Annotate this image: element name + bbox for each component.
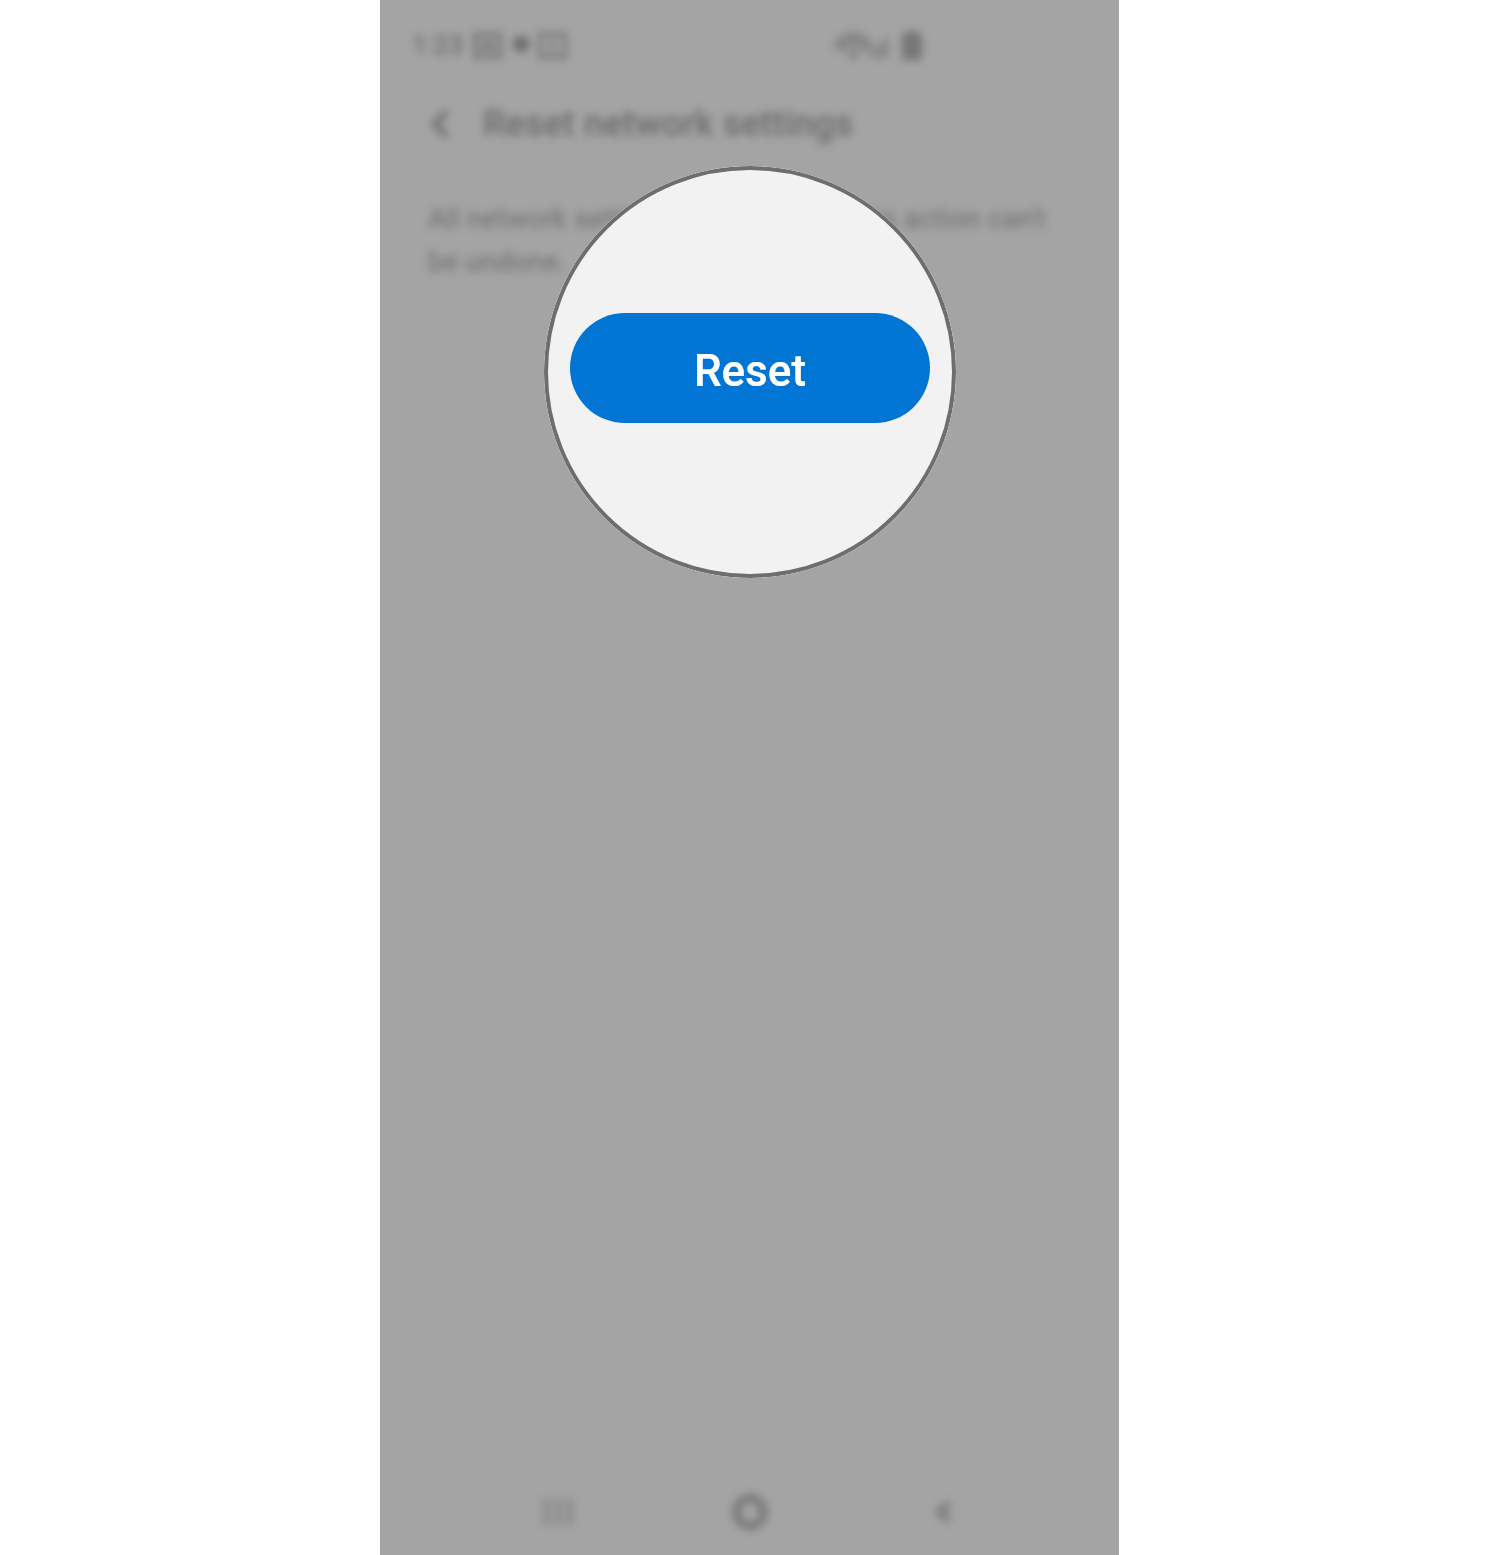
button[interactable]: Home — [731, 1493, 769, 1531]
staticText: Reset network settings — [483, 103, 853, 145]
button[interactable]: Navigate up — [423, 106, 459, 142]
button[interactable]: Reset — [570, 313, 930, 423]
staticText: All network settings will be reset. This… — [428, 202, 1046, 278]
staticText: 1:23 — [412, 30, 464, 60]
button[interactable]: Recent apps — [544, 1495, 576, 1529]
button[interactable]: Back — [928, 1496, 960, 1528]
staticText: Reset — [694, 345, 807, 397]
